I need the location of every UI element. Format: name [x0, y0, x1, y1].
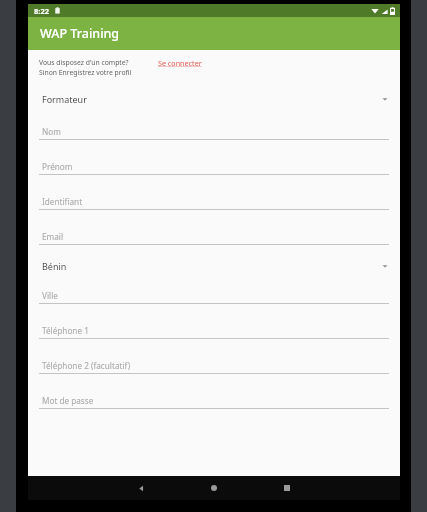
staticText: Email — [42, 231, 64, 242]
button[interactable]: Téléphone 2 (facultatif) — [39, 360, 389, 374]
staticText: Téléphone 1 — [42, 325, 89, 336]
button[interactable]: Formateur — [39, 91, 389, 107]
staticText: 8:22 — [34, 6, 49, 16]
button[interactable]: Recent apps — [279, 480, 295, 496]
staticText: Formateur — [42, 93, 87, 105]
button[interactable]: Nom — [39, 126, 389, 140]
button[interactable]: Mot de passe — [39, 395, 389, 409]
other: Open dropdown — [381, 95, 389, 103]
staticText: Bénin — [42, 260, 67, 272]
staticText: Mot de passe — [42, 395, 94, 406]
staticText: Ville — [42, 290, 58, 301]
button[interactable]: Ville — [39, 290, 389, 304]
other: Open dropdown — [381, 262, 389, 270]
button[interactable]: Identifiant — [39, 196, 389, 210]
button[interactable]: Se connecter — [158, 58, 202, 68]
staticText: ENREGISTRER — [190, 480, 239, 490]
button[interactable]: Téléphone 1 — [39, 325, 389, 339]
button[interactable]: ENREGISTRER — [39, 476, 389, 493]
staticText: WAP Training — [40, 25, 120, 42]
button[interactable]: Email — [39, 231, 389, 245]
staticText: Identifiant — [42, 196, 83, 207]
button[interactable]: Home — [206, 480, 222, 496]
button[interactable]: Bénin — [39, 258, 389, 274]
staticText: Se connecter — [158, 58, 202, 68]
button[interactable]: Back — [133, 480, 149, 496]
staticText: Nom — [42, 126, 61, 137]
staticText: Vous disposez d'un compte? — [39, 58, 129, 67]
staticText: Prénom — [42, 161, 73, 172]
staticText: Téléphone 2 (facultatif) — [42, 360, 131, 371]
button[interactable]: Prénom — [39, 161, 389, 175]
staticText: Sinon Enregistrez votre profil — [39, 68, 132, 77]
